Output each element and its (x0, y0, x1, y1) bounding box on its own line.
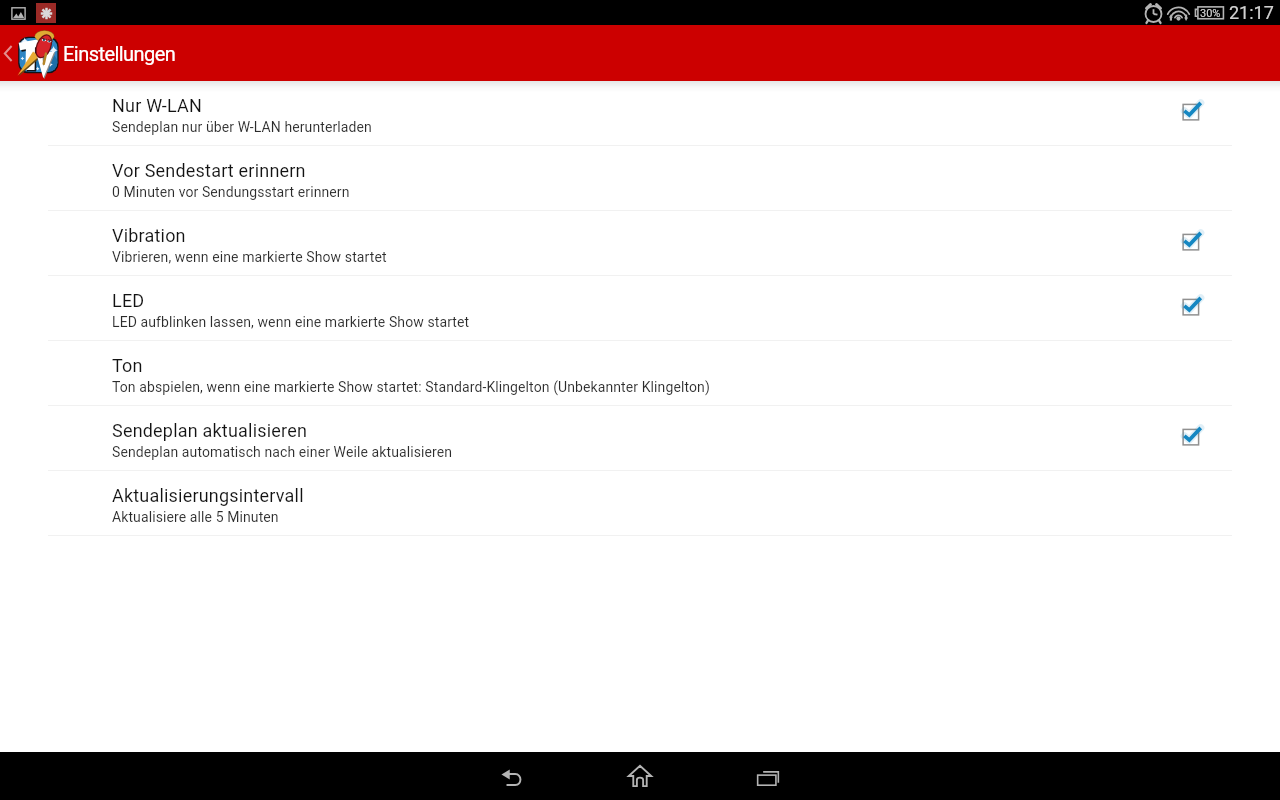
button[interactable]: Aktualisierungsintervall (0, 471, 1280, 536)
staticText: 30% (1200, 7, 1221, 20)
staticText: 0 Minuten vor Sendungsstart erinnern (112, 184, 350, 200)
button[interactable]: Vor Sendestart erinnern (0, 146, 1280, 211)
button[interactable]: Ton (0, 341, 1280, 406)
staticText: Sendeplan automatisch nach einer Weile a… (112, 444, 453, 460)
button[interactable]: Vibration (0, 211, 1280, 276)
button[interactable]: Checkbox (1174, 291, 1210, 327)
button[interactable]: Nur W-LAN (0, 81, 1280, 146)
staticText: Nur W-LAN (112, 95, 202, 116)
staticText: LED aufblinken lassen, wenn eine markier… (112, 314, 470, 330)
staticText: Vibration (112, 225, 186, 246)
staticText: Sendeplan aktualisieren (112, 420, 308, 441)
button[interactable]: Checkbox (1174, 226, 1210, 262)
staticText: Aktualisiere alle 5 Minuten (112, 509, 279, 525)
button[interactable]: Back (448, 752, 576, 800)
staticText: Vor Sendestart erinnern (112, 160, 306, 181)
staticText: Ton (112, 355, 143, 376)
staticText: Sendeplan nur über W-LAN herunterladen (112, 119, 372, 135)
staticText: Aktualisierungsintervall (112, 485, 304, 506)
button[interactable]: Home (576, 752, 704, 800)
button[interactable]: Navigate up (0, 25, 59, 81)
button[interactable]: Recent apps (704, 752, 832, 800)
button[interactable]: Checkbox (1174, 96, 1210, 132)
staticText: Vibrieren, wenn eine markierte Show star… (112, 249, 387, 265)
button[interactable]: LED (0, 276, 1280, 341)
button[interactable]: Sendeplan aktualisieren (0, 406, 1280, 471)
staticText: 21:17 (1229, 2, 1274, 23)
staticText: Ton abspielen, wenn eine markierte Show … (112, 379, 710, 395)
staticText: LED (112, 290, 145, 311)
button[interactable]: Checkbox (1174, 421, 1210, 457)
staticText: Einstellungen (63, 42, 176, 65)
